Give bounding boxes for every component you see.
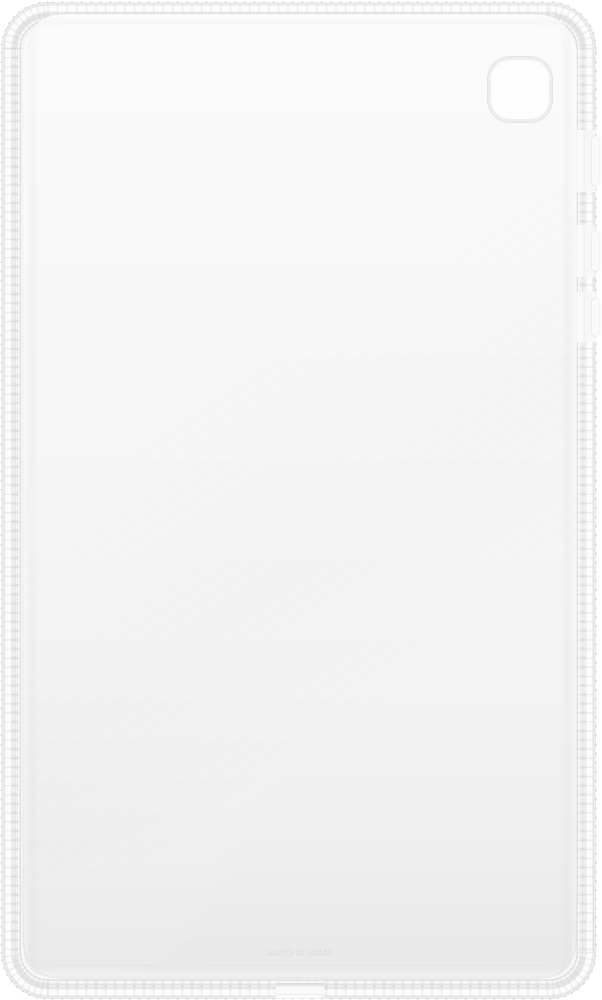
button[interactable]: Camera cut-out bbox=[487, 56, 553, 123]
